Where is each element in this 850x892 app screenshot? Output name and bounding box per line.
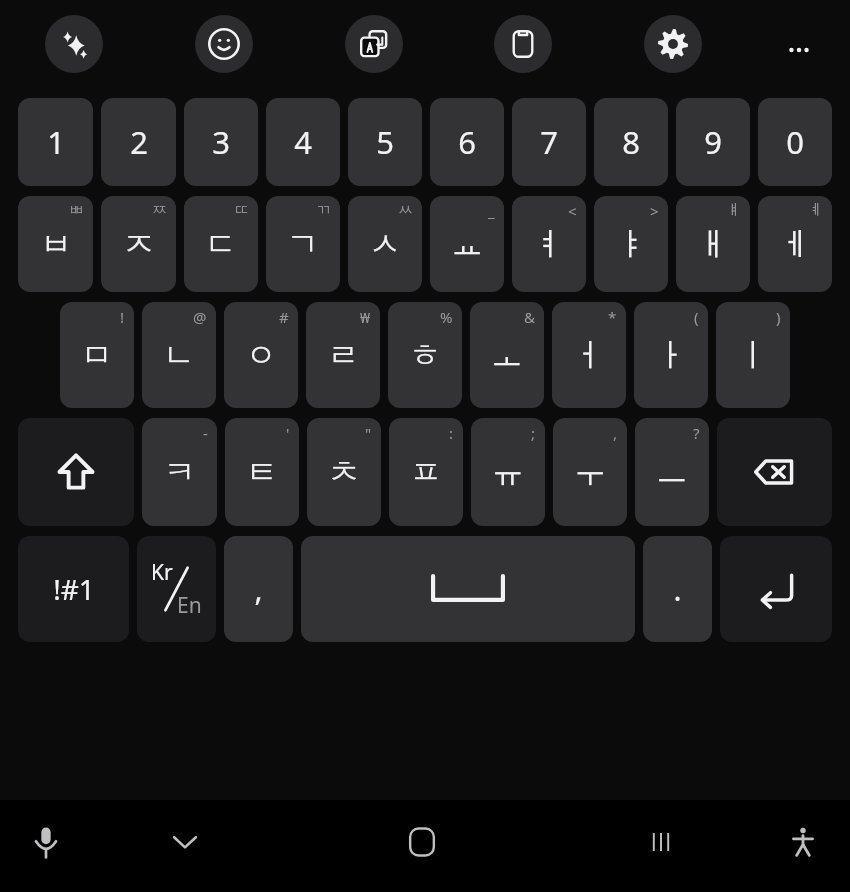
staticText: 6 <box>458 121 476 163</box>
button[interactable]: 1 <box>18 98 93 186</box>
button[interactable]: 6 <box>430 98 504 186</box>
staticText: > <box>650 201 659 221</box>
button[interactable]: Settings <box>644 15 702 73</box>
staticText: ? <box>693 423 700 443</box>
staticText: ㅛ <box>451 224 483 264</box>
button[interactable]: ㅗ <box>470 302 544 408</box>
button[interactable]: ㅋ <box>142 418 217 526</box>
button[interactable]: More options <box>771 22 827 78</box>
button[interactable]: ㅜ <box>553 418 627 526</box>
staticText: . <box>673 569 682 610</box>
button[interactable]: Emoji <box>195 15 253 73</box>
button[interactable]: ㄱ <box>266 196 340 292</box>
staticText: 5 <box>376 121 394 163</box>
button[interactable]: ㅏ <box>634 302 708 408</box>
staticText: ㅣ <box>737 335 769 375</box>
staticText: ㅂ <box>40 224 72 264</box>
staticText: : <box>449 423 454 443</box>
button[interactable]: ㅠ <box>471 418 545 526</box>
button[interactable]: ㄴ <box>142 302 216 408</box>
staticText: !#1 <box>53 570 95 608</box>
button[interactable]: 3 <box>184 98 258 186</box>
staticText: ㄱ <box>287 224 319 264</box>
other: AI suggestions <box>58 28 90 60</box>
staticText: ㄹ <box>327 335 359 375</box>
staticText: 7 <box>540 121 558 163</box>
button[interactable]: 5 <box>348 98 422 186</box>
staticText: ㄴ <box>163 335 195 375</box>
staticText: ㅕ <box>533 224 565 264</box>
button[interactable]: ㅣ <box>716 302 790 408</box>
staticText: ㅠ <box>492 452 524 492</box>
staticText: , <box>254 569 263 610</box>
staticText: 0 <box>786 121 804 163</box>
staticText: ㅡ <box>656 452 688 492</box>
button[interactable]: 9 <box>676 98 750 186</box>
button[interactable]: 7 <box>512 98 586 186</box>
staticText: 2 <box>130 121 148 163</box>
button[interactable]: AI suggestions <box>45 15 103 73</box>
other: Clipboard <box>507 28 539 60</box>
button[interactable]: , <box>224 536 293 642</box>
button[interactable]: ㅔ <box>758 196 832 292</box>
button[interactable]: ㅓ <box>552 302 626 408</box>
button[interactable]: Korean English toggle <box>137 536 216 642</box>
button[interactable]: ㅛ <box>430 196 504 292</box>
staticText: ㅍ <box>410 452 442 492</box>
staticText: ㅁ <box>81 335 113 375</box>
button[interactable]: Hide keyboard <box>153 810 217 874</box>
button[interactable]: ㅊ <box>307 418 381 526</box>
button[interactable]: ㅐ <box>676 196 750 292</box>
button[interactable]: Backspace <box>717 418 832 526</box>
button[interactable]: ㅈ <box>101 196 176 292</box>
button[interactable]: !#1 <box>18 536 129 642</box>
button[interactable]: ㅑ <box>594 196 668 292</box>
staticText: ㅖ <box>808 201 823 220</box>
button[interactable]: Accessibility <box>771 810 835 874</box>
staticText: 9 <box>704 121 722 163</box>
button[interactable]: ㅁ <box>60 302 134 408</box>
button[interactable]: . <box>643 536 712 642</box>
staticText: ㅑ <box>615 224 647 264</box>
button[interactable]: ㅍ <box>389 418 463 526</box>
staticText: ㅉ <box>152 201 167 220</box>
button[interactable]: Space <box>301 536 635 642</box>
button[interactable]: 2 <box>101 98 176 186</box>
button[interactable]: Voice input <box>14 810 78 874</box>
button[interactable]: Translate <box>345 15 403 73</box>
staticText: % <box>440 307 453 327</box>
staticText: ㅎ <box>409 335 441 375</box>
button[interactable]: ㅅ <box>348 196 422 292</box>
button[interactable]: 0 <box>758 98 832 186</box>
button[interactable]: Shift <box>18 418 134 526</box>
button[interactable]: Recent apps <box>629 810 693 874</box>
staticText: ㅌ <box>246 452 278 492</box>
button[interactable]: ㄷ <box>184 196 258 292</box>
staticText: - <box>203 423 208 443</box>
staticText: ㄷ <box>205 224 237 264</box>
staticText: 8 <box>622 121 640 163</box>
staticText: ㄸ <box>234 201 249 220</box>
staticText: _ <box>488 201 495 221</box>
button[interactable]: ㅕ <box>512 196 586 292</box>
staticText: * <box>608 307 617 327</box>
button[interactable]: 4 <box>266 98 340 186</box>
staticText: ₩ <box>360 307 371 327</box>
button[interactable]: ㅌ <box>225 418 299 526</box>
staticText: < <box>568 201 577 221</box>
button[interactable]: Home <box>390 810 454 874</box>
staticText: ㅔ <box>779 224 811 264</box>
staticText: ㅊ <box>328 452 360 492</box>
staticText: ㅜ <box>574 452 606 492</box>
button[interactable]: 8 <box>594 98 668 186</box>
button[interactable]: ㄹ <box>306 302 380 408</box>
staticText: ㅐ <box>697 224 729 264</box>
staticText: ' <box>286 423 290 443</box>
button[interactable]: Clipboard <box>494 15 552 73</box>
button[interactable]: ㅇ <box>224 302 298 408</box>
staticText: ! <box>120 307 125 327</box>
button[interactable]: ㅎ <box>388 302 462 408</box>
button[interactable]: Enter <box>720 536 832 642</box>
button[interactable]: ㅂ <box>18 196 93 292</box>
button[interactable]: ㅡ <box>635 418 709 526</box>
